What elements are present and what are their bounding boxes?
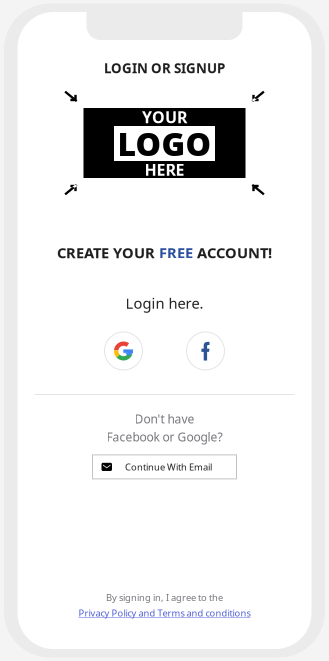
staticText: By signing in, I agree to the <box>106 591 223 604</box>
staticText: Don't have <box>134 411 194 427</box>
button[interactable]: Continue With Email <box>92 455 236 479</box>
staticText: FREE <box>159 243 193 262</box>
staticText: Login here. <box>125 293 203 313</box>
staticText: HERE <box>144 159 184 180</box>
button[interactable]: Sign in with Google <box>104 332 142 370</box>
staticText: Privacy Policy and Terms and conditions <box>78 607 250 619</box>
staticText: LOGIN OR SIGNUP <box>104 59 225 77</box>
button[interactable]: Sign in with Facebook <box>186 332 224 370</box>
staticText: ACCOUNT! <box>193 243 272 262</box>
button[interactable]: Privacy Policy and Terms and conditions <box>78 607 250 619</box>
staticText: Continue With Email <box>125 461 212 473</box>
staticText: CREATE YOUR <box>57 243 159 262</box>
staticText: LOGO <box>117 122 211 165</box>
staticText: YOUR <box>142 106 187 128</box>
staticText: Facebook or Google? <box>106 429 222 445</box>
